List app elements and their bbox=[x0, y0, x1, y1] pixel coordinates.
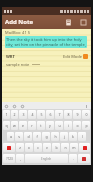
staticText: 6 bbox=[49, 112, 52, 117]
staticText: e bbox=[22, 123, 24, 128]
staticText: 2 bbox=[13, 112, 16, 117]
button[interactable]: x bbox=[25, 143, 33, 152]
button[interactable]: z bbox=[16, 143, 24, 152]
button[interactable]: Backspace bbox=[79, 143, 90, 152]
button[interactable]: 9 bbox=[73, 110, 81, 119]
staticText: Edit Mode bbox=[63, 54, 82, 59]
staticText: x bbox=[28, 145, 30, 150]
button[interactable]: ?123 bbox=[3, 154, 15, 163]
button[interactable]: Save note bbox=[62, 16, 74, 28]
staticText: Add Note bbox=[5, 18, 34, 26]
button[interactable]: y bbox=[46, 121, 54, 130]
staticText: r bbox=[31, 123, 33, 128]
button[interactable]: , bbox=[16, 154, 24, 163]
button[interactable]: Enter bbox=[78, 154, 90, 163]
button[interactable]: 6 bbox=[46, 110, 54, 119]
staticText: u bbox=[58, 123, 61, 128]
staticText: , bbox=[20, 156, 21, 161]
staticText: m bbox=[72, 145, 76, 150]
button[interactable]: 4 bbox=[28, 110, 36, 119]
button[interactable]: r bbox=[28, 121, 36, 130]
button[interactable]: q bbox=[3, 121, 10, 130]
button[interactable]: Hide keyboard bbox=[84, 104, 88, 108]
staticText: w bbox=[13, 123, 16, 128]
button[interactable]: 0 bbox=[82, 110, 90, 119]
button[interactable]: s bbox=[15, 132, 23, 141]
button[interactable]: 2 bbox=[11, 110, 18, 119]
button[interactable]: 3 bbox=[19, 110, 27, 119]
staticText: h bbox=[54, 134, 57, 139]
staticText: q bbox=[5, 123, 8, 128]
staticText: z bbox=[19, 145, 21, 150]
staticText: 9 bbox=[76, 112, 79, 117]
staticText: p bbox=[85, 123, 88, 128]
staticText: i bbox=[68, 123, 69, 128]
staticText: a bbox=[10, 134, 12, 139]
button[interactable]: d bbox=[24, 132, 32, 141]
button[interactable]: 8 bbox=[64, 110, 72, 119]
staticText: 4 bbox=[31, 112, 34, 117]
staticText: b bbox=[55, 145, 58, 150]
button[interactable]: l bbox=[78, 132, 86, 141]
staticText: t bbox=[40, 123, 42, 128]
staticText: o bbox=[76, 123, 79, 128]
staticText: 5 bbox=[40, 112, 43, 117]
staticText: 3 bbox=[22, 112, 25, 117]
staticText: . bbox=[73, 156, 74, 161]
button[interactable]: e bbox=[19, 121, 27, 130]
button[interactable]: h bbox=[51, 132, 59, 141]
button[interactable]: b bbox=[52, 143, 60, 152]
staticText: English bbox=[41, 157, 52, 161]
staticText: n bbox=[64, 145, 67, 150]
staticText: k bbox=[72, 134, 74, 139]
button[interactable]: f bbox=[33, 132, 41, 141]
button[interactable]: . bbox=[69, 154, 77, 163]
button[interactable]: Settings bbox=[4, 104, 8, 108]
staticText: v bbox=[46, 145, 48, 150]
staticText: l bbox=[82, 134, 83, 139]
staticText: WRT bbox=[6, 54, 15, 59]
button[interactable]: 7 bbox=[55, 110, 63, 119]
staticText: d bbox=[27, 134, 30, 139]
staticText: y bbox=[49, 123, 51, 128]
button[interactable]: k bbox=[69, 132, 77, 141]
button[interactable]: n bbox=[61, 143, 69, 152]
button[interactable]: t bbox=[37, 121, 45, 130]
button[interactable]: w bbox=[11, 121, 18, 130]
button[interactable]: Clipboard bbox=[12, 104, 16, 108]
button[interactable]: More options bbox=[77, 16, 89, 28]
button[interactable]: Space bbox=[25, 154, 68, 163]
staticText: 1 bbox=[5, 112, 8, 117]
staticText: 7 bbox=[58, 112, 61, 117]
staticText: Then the sky it took him up into the hol… bbox=[6, 37, 86, 47]
button[interactable]: Then the sky it took him up into the hol… bbox=[5, 36, 87, 48]
button[interactable]: m bbox=[70, 143, 78, 152]
staticText: c bbox=[37, 145, 39, 150]
button[interactable]: Shift bbox=[3, 143, 15, 152]
button[interactable]: a bbox=[7, 132, 14, 141]
staticText: 0 bbox=[85, 112, 88, 117]
button[interactable]: i bbox=[64, 121, 72, 130]
button[interactable]: Edit Mode bbox=[63, 54, 88, 59]
button[interactable]: j bbox=[60, 132, 68, 141]
button[interactable]: o bbox=[73, 121, 81, 130]
button[interactable]: c bbox=[34, 143, 42, 152]
button[interactable]: 5 bbox=[37, 110, 45, 119]
staticText: ?123 bbox=[6, 157, 13, 161]
button[interactable]: g bbox=[42, 132, 50, 141]
staticText: sample note bbox=[6, 62, 30, 67]
staticText: j bbox=[64, 134, 65, 139]
staticText: s bbox=[18, 134, 20, 139]
button[interactable]: 1 bbox=[3, 110, 10, 119]
staticText: f bbox=[36, 134, 38, 139]
button[interactable]: u bbox=[55, 121, 63, 130]
button[interactable]: v bbox=[43, 143, 51, 152]
button[interactable]: Emoji bbox=[20, 104, 24, 108]
staticText: g bbox=[45, 134, 48, 139]
button[interactable]: p bbox=[82, 121, 90, 130]
staticText: 8 bbox=[67, 112, 70, 117]
staticText: MailBox: 41 S bbox=[5, 30, 30, 35]
